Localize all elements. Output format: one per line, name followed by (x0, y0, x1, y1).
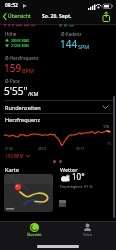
staticText: Wetter (60, 166, 78, 173)
staticText: /KM (28, 90, 39, 97)
button[interactable]: Rundenzeiten (0, 101, 114, 113)
staticText: 176 (103, 124, 110, 129)
staticText: 73 (107, 141, 112, 146)
staticText: 07:46 (5, 147, 14, 151)
staticText: Ø-Kadenz (61, 31, 82, 37)
button[interactable] (4, 174, 53, 212)
staticText: 144 (60, 37, 78, 51)
staticText: 08:19 (76, 147, 85, 151)
staticText: 159 BPM (5, 153, 24, 159)
staticText: Herzfrequenz (5, 116, 41, 123)
staticText: Übersicht (8, 13, 31, 20)
staticText: 5'55" (4, 84, 28, 98)
button[interactable]: Übersicht (18, 223, 50, 243)
button[interactable]: Teilen (71, 223, 103, 243)
staticText: BPM (22, 67, 34, 74)
button[interactable] (100, 11, 112, 23)
staticText: Feuchtigkeit: 91 % (60, 184, 93, 189)
staticText: Höhe (5, 31, 17, 37)
staticText: 212M MIN (11, 43, 29, 48)
button[interactable]: Übersicht (2, 12, 32, 21)
staticText: 08:02 (38, 147, 47, 151)
staticText: 159 (4, 61, 22, 75)
staticText: Teilen (83, 233, 92, 237)
staticText: Übersicht (27, 233, 42, 237)
staticText: Rundenzeiten (5, 104, 41, 111)
staticText: 08:52 (5, 2, 18, 9)
staticText: Ø-Herzfrequenz (5, 55, 39, 61)
staticText: SPM (78, 43, 90, 50)
staticText: 285M MAX (11, 38, 30, 43)
button[interactable]: 159 BPM (4, 152, 31, 160)
staticText: So. 20. Sept. (42, 13, 72, 20)
staticText: Karte (5, 166, 19, 173)
staticText: 10° (72, 171, 85, 182)
staticText: Ø-Pace (5, 78, 20, 84)
